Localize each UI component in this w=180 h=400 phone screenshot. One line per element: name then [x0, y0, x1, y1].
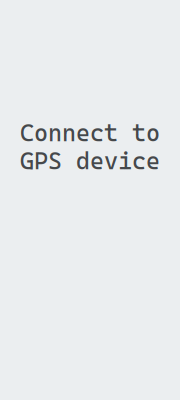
staticText: GPS device: [20, 147, 160, 175]
staticText: Connect to: [20, 119, 160, 147]
